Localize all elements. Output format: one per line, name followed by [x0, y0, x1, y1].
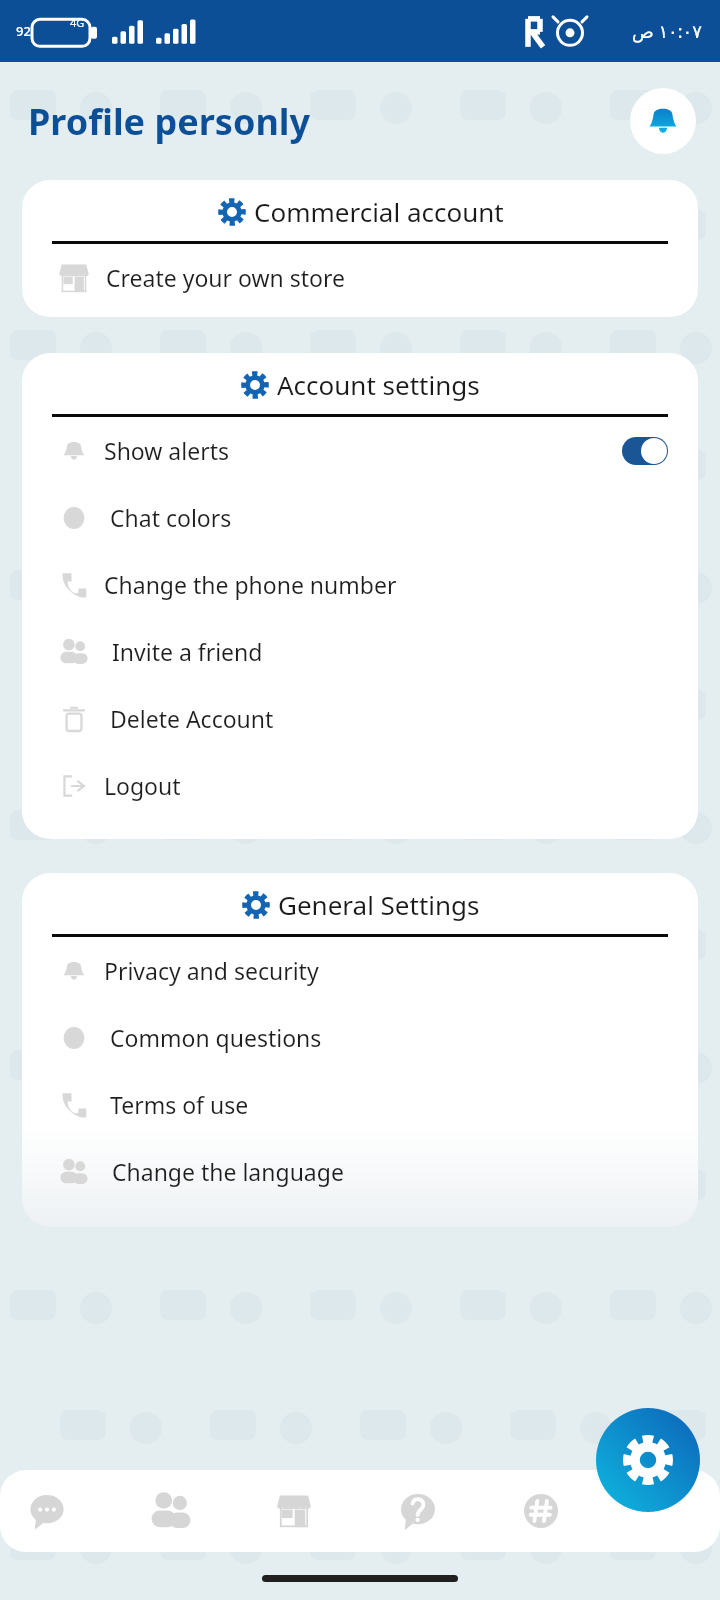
button[interactable]: Chat colors: [22, 484, 698, 551]
staticText: General Settings: [278, 887, 480, 922]
staticText: Invite a friend: [112, 636, 263, 667]
button[interactable]: Change the language: [22, 1138, 698, 1205]
button[interactable]: Tags: [512, 1482, 570, 1540]
button[interactable]: Logout: [22, 752, 698, 819]
staticText: Privacy and security: [104, 955, 319, 986]
staticText: Show alerts: [104, 435, 229, 466]
staticText: Change the phone number: [104, 569, 397, 600]
staticText: Logout: [104, 770, 181, 801]
button[interactable]: [622, 437, 668, 465]
staticText: ١٠:٠٧ ص: [632, 19, 702, 44]
button[interactable]: Change the phone number: [22, 551, 698, 618]
button[interactable]: Settings: [596, 1408, 700, 1512]
staticText: Account settings: [277, 367, 480, 402]
button[interactable]: Chats: [18, 1482, 76, 1540]
staticText: Terms of use: [110, 1089, 249, 1120]
staticText: Change the language: [112, 1156, 344, 1187]
staticText: 92: [16, 22, 31, 40]
staticText: Profile personly: [28, 97, 311, 146]
button[interactable]: Privacy and security: [22, 937, 698, 1004]
button[interactable]: Invite a friend: [22, 618, 698, 685]
button[interactable]: Store: [265, 1482, 323, 1540]
button[interactable]: Create your own store: [22, 244, 698, 311]
button[interactable]: Show alerts: [22, 417, 698, 484]
button[interactable]: Common questions: [22, 1004, 698, 1071]
staticText: Commercial account: [254, 194, 504, 229]
button[interactable]: Help: [389, 1482, 447, 1540]
button[interactable]: Notifications: [630, 88, 696, 154]
button[interactable]: Terms of use: [22, 1071, 698, 1138]
staticText: Delete Account: [110, 703, 274, 734]
staticText: Create your own store: [106, 262, 346, 293]
button[interactable]: Delete Account: [22, 685, 698, 752]
staticText: Chat colors: [110, 502, 232, 533]
button[interactable]: Friends: [142, 1482, 200, 1540]
staticText: Common questions: [110, 1022, 322, 1053]
staticText: 4G: [70, 15, 85, 30]
